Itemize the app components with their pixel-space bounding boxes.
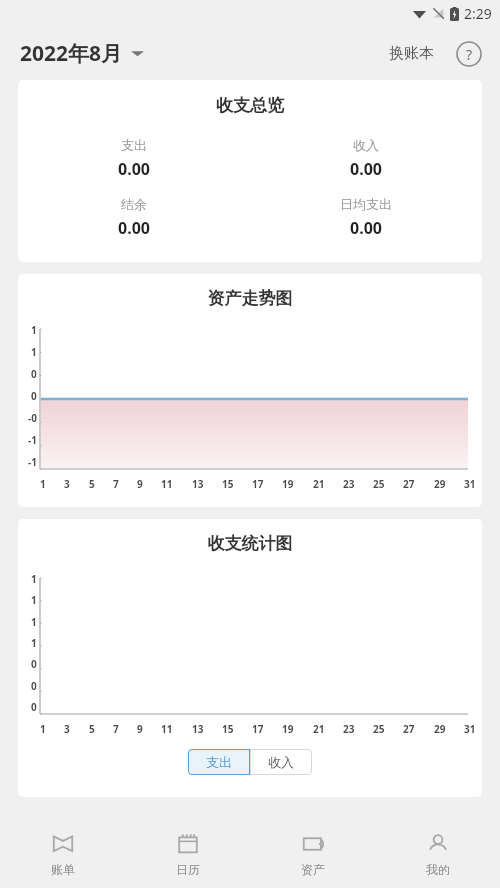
staticText: 日历 xyxy=(176,862,200,877)
staticText: 17 xyxy=(252,722,264,736)
staticText: 31 xyxy=(464,722,476,736)
button[interactable]: 换账本 xyxy=(383,38,440,69)
button[interactable]: 日历 xyxy=(125,822,250,888)
staticText: 27 xyxy=(403,477,415,491)
staticText: 2022年8月 xyxy=(20,39,123,68)
staticText: -1 xyxy=(28,455,37,469)
button[interactable]: 结余 xyxy=(18,196,250,239)
staticText: 0 xyxy=(31,679,37,693)
staticText: 29 xyxy=(434,477,446,491)
staticText: 1 xyxy=(31,615,37,629)
staticText: 23 xyxy=(343,722,355,736)
staticText: 0 xyxy=(31,367,37,381)
button[interactable]: 收入 xyxy=(250,749,312,775)
staticText: 收支统计图 xyxy=(18,533,482,554)
staticText: 31 xyxy=(464,477,476,491)
staticText: 21 xyxy=(313,722,325,736)
staticText: 21 xyxy=(313,477,325,491)
staticText: 3 xyxy=(64,722,70,736)
staticText: 23 xyxy=(343,477,355,491)
staticText: 收支总览 xyxy=(18,95,482,116)
staticText: 收入 xyxy=(353,137,379,153)
staticText: 1 xyxy=(31,323,37,337)
staticText: 3 xyxy=(64,477,70,491)
staticText: 支出 xyxy=(121,137,147,153)
staticText: 5 xyxy=(89,477,95,491)
staticText: 收入 xyxy=(268,754,294,770)
staticText: 1 xyxy=(31,572,37,586)
staticText: 0.00 xyxy=(350,217,382,239)
staticText: 11 xyxy=(161,477,173,491)
button[interactable]: 支出 xyxy=(18,137,250,180)
staticText: 27 xyxy=(403,722,415,736)
staticText: 7 xyxy=(113,722,119,736)
staticText: 0 xyxy=(31,657,37,671)
staticText: 我的 xyxy=(426,862,450,877)
staticText: 9 xyxy=(137,722,143,736)
staticText: 5 xyxy=(89,722,95,736)
staticText: -1 xyxy=(28,433,37,447)
staticText: ? xyxy=(466,45,473,64)
staticText: 日均支出 xyxy=(340,196,392,212)
staticText: 13 xyxy=(192,477,204,491)
button[interactable]: Help xyxy=(454,39,484,69)
button[interactable]: 2022年8月 xyxy=(18,35,146,72)
button[interactable]: 收入 xyxy=(250,137,482,180)
staticText: 7 xyxy=(113,477,119,491)
staticText: 1 xyxy=(40,477,46,491)
staticText: 结余 xyxy=(121,196,147,212)
staticText: 0 xyxy=(31,389,37,403)
staticText: 17 xyxy=(252,477,264,491)
staticText: 1 xyxy=(31,593,37,607)
staticText: 1 xyxy=(31,636,37,650)
button[interactable]: 日均支出 xyxy=(250,196,482,239)
staticText: 0 xyxy=(31,700,37,714)
button[interactable]: 支出 xyxy=(188,749,250,775)
staticText: 25 xyxy=(373,722,385,736)
staticText: 支出 xyxy=(206,754,232,770)
staticText: 0.00 xyxy=(350,158,382,180)
staticText: 2:29 xyxy=(464,4,492,23)
staticText: 15 xyxy=(222,477,234,491)
staticText: 29 xyxy=(434,722,446,736)
staticText: 25 xyxy=(373,477,385,491)
staticText: 13 xyxy=(192,722,204,736)
button[interactable]: 资产 xyxy=(250,822,375,888)
staticText: 19 xyxy=(282,477,294,491)
staticText: 资产 xyxy=(301,862,325,877)
staticText: 19 xyxy=(282,722,294,736)
staticText: 资产走势图 xyxy=(18,288,482,309)
staticText: 9 xyxy=(137,477,143,491)
staticText: 15 xyxy=(222,722,234,736)
staticText: 换账本 xyxy=(389,44,434,63)
staticText: 账单 xyxy=(51,862,75,877)
staticText: -0 xyxy=(28,411,37,425)
staticText: 0.00 xyxy=(118,158,150,180)
staticText: 1 xyxy=(40,722,46,736)
button[interactable]: 账单 xyxy=(0,822,125,888)
button[interactable]: 我的 xyxy=(375,822,500,888)
staticText: 11 xyxy=(161,722,173,736)
staticText: 0.00 xyxy=(118,217,150,239)
staticText: 1 xyxy=(31,345,37,359)
